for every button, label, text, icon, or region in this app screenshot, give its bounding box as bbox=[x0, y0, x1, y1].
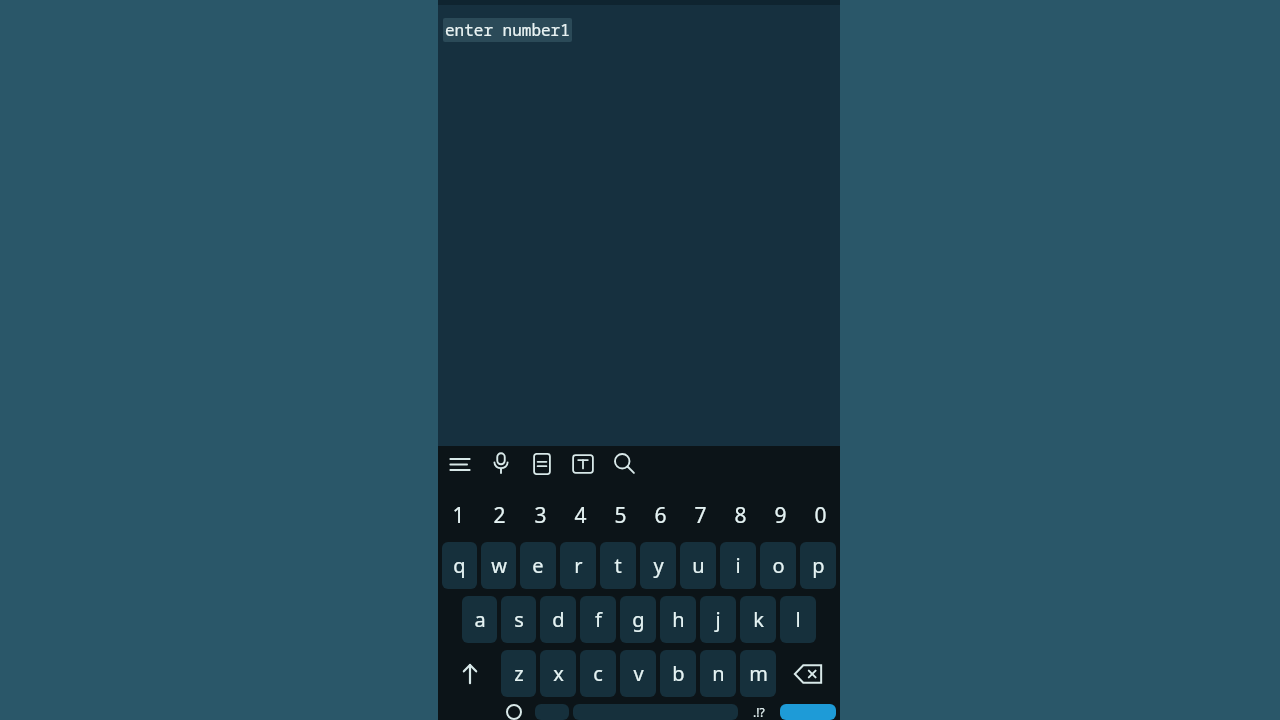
button[interactable]: g bbox=[620, 596, 656, 643]
staticText: a bbox=[474, 606, 486, 633]
button[interactable]: 1 bbox=[438, 493, 479, 538]
button[interactable]: Search bbox=[606, 445, 642, 481]
staticText: s bbox=[514, 606, 524, 633]
button[interactable]: Clipboard bbox=[524, 446, 560, 482]
button[interactable]: 5 bbox=[600, 493, 640, 538]
staticText: 9 bbox=[774, 501, 787, 530]
button[interactable]: q bbox=[442, 542, 477, 589]
button[interactable]: 4 bbox=[560, 493, 600, 538]
staticText: h bbox=[672, 606, 685, 633]
button[interactable]: y bbox=[640, 542, 676, 589]
button[interactable]: 2 bbox=[479, 493, 520, 538]
button[interactable]: c bbox=[580, 650, 616, 697]
button[interactable]: s bbox=[501, 596, 536, 643]
button[interactable]: p bbox=[800, 542, 836, 589]
button[interactable]: 6 bbox=[640, 493, 680, 538]
staticText: .!? bbox=[753, 704, 765, 720]
button[interactable]: 8 bbox=[720, 493, 760, 538]
staticText: z bbox=[514, 660, 524, 687]
staticText: m bbox=[749, 660, 768, 687]
button[interactable]: a bbox=[462, 596, 497, 643]
button[interactable]: 7 bbox=[680, 493, 720, 538]
staticText: x bbox=[553, 660, 564, 687]
staticText: enter number1 bbox=[445, 19, 570, 41]
staticText: n bbox=[712, 660, 725, 687]
staticText: j bbox=[715, 606, 721, 633]
staticText: k bbox=[753, 606, 764, 633]
staticText: 3 bbox=[534, 501, 547, 530]
staticText: f bbox=[595, 606, 602, 633]
button[interactable]: i bbox=[720, 542, 756, 589]
staticText: 4 bbox=[574, 501, 587, 530]
button[interactable]: v bbox=[620, 650, 656, 697]
staticText: r bbox=[574, 552, 583, 579]
staticText: 1 bbox=[452, 501, 465, 530]
button[interactable]: Backspace bbox=[780, 650, 836, 697]
button[interactable]: Menu bbox=[442, 446, 478, 482]
staticText: o bbox=[772, 552, 785, 579]
staticText: 2 bbox=[493, 501, 506, 530]
button[interactable]: o bbox=[760, 542, 796, 589]
button[interactable]: m bbox=[740, 650, 776, 697]
button[interactable]: Enter bbox=[780, 704, 836, 720]
button[interactable]: 0 bbox=[800, 493, 840, 538]
staticText: v bbox=[633, 660, 644, 687]
staticText: 0 bbox=[814, 501, 827, 530]
staticText: l bbox=[795, 606, 801, 633]
staticText: 8 bbox=[734, 501, 747, 530]
button[interactable]: Emoji bbox=[497, 704, 531, 720]
button[interactable]: j bbox=[700, 596, 736, 643]
staticText: t bbox=[614, 552, 622, 579]
staticText: p bbox=[812, 552, 825, 579]
button[interactable]: d bbox=[540, 596, 576, 643]
staticText: d bbox=[552, 606, 565, 633]
staticText: 5 bbox=[614, 501, 627, 530]
button[interactable]: f bbox=[580, 596, 616, 643]
staticText: w bbox=[491, 552, 507, 579]
button[interactable]: 9 bbox=[760, 493, 800, 538]
staticText: i bbox=[735, 552, 741, 579]
button[interactable]: Voice input bbox=[483, 445, 519, 481]
button[interactable]: , bbox=[535, 704, 569, 720]
button[interactable]: .!? bbox=[742, 704, 776, 720]
staticText: u bbox=[692, 552, 705, 579]
staticText: b bbox=[672, 660, 685, 687]
button[interactable]: x bbox=[540, 650, 576, 697]
staticText: 7 bbox=[694, 501, 707, 530]
button[interactable]: n bbox=[700, 650, 736, 697]
staticText: e bbox=[532, 552, 544, 579]
staticText: y bbox=[653, 552, 664, 579]
button[interactable]: enter number1 bbox=[443, 18, 572, 42]
button[interactable]: l bbox=[780, 596, 816, 643]
button[interactable]: h bbox=[660, 596, 696, 643]
button[interactable]: Space bbox=[573, 704, 738, 720]
staticText: g bbox=[632, 606, 645, 633]
button[interactable]: Text editing bbox=[565, 446, 601, 482]
button[interactable]: u bbox=[680, 542, 716, 589]
button[interactable]: Shift bbox=[442, 650, 497, 697]
staticText: c bbox=[593, 660, 603, 687]
button[interactable]: z bbox=[501, 650, 536, 697]
button[interactable]: t bbox=[600, 542, 636, 589]
staticText: 6 bbox=[654, 501, 667, 530]
button[interactable]: b bbox=[660, 650, 696, 697]
button[interactable]: e bbox=[520, 542, 556, 589]
staticText: q bbox=[453, 552, 466, 579]
button[interactable]: w bbox=[481, 542, 516, 589]
button[interactable]: r bbox=[560, 542, 596, 589]
button[interactable]: 3 bbox=[520, 493, 560, 538]
button[interactable]: k bbox=[740, 596, 776, 643]
